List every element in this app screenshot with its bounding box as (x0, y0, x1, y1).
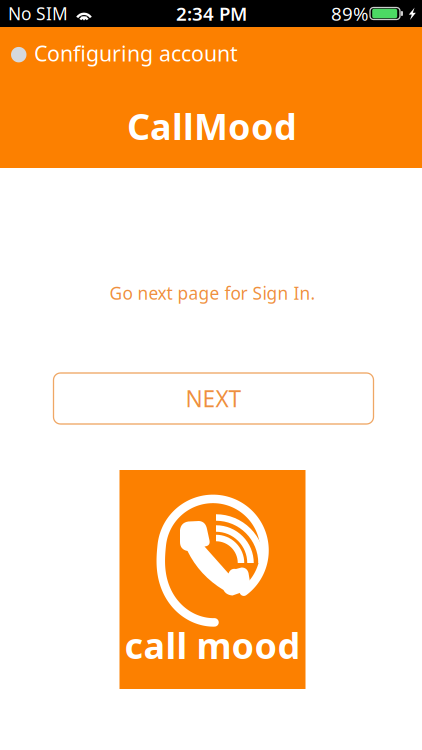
staticText: Go next page for Sign In. (109, 281, 315, 304)
staticText: NEXT (185, 383, 241, 413)
staticText: Configuring account (34, 39, 238, 67)
button[interactable]: NEXT (53, 373, 373, 424)
staticText: 2:34 PM (176, 1, 247, 26)
staticText: call mood (124, 621, 300, 669)
staticText: CallMood (127, 102, 297, 150)
staticText: 89% (331, 1, 369, 26)
staticText: No SIM (8, 2, 68, 25)
